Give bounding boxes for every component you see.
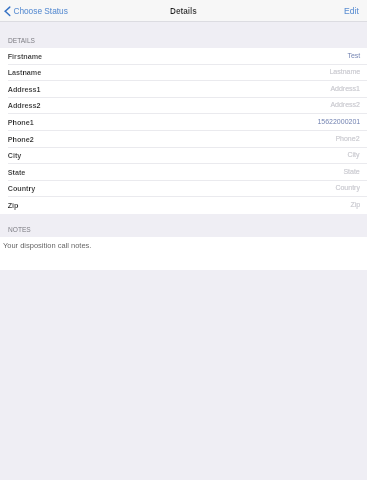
button[interactable]: Phone2 bbox=[0, 131, 367, 148]
button[interactable]: City bbox=[0, 148, 367, 164]
staticText: Phone2 bbox=[335, 135, 360, 143]
staticText: Lastname bbox=[329, 68, 360, 76]
staticText: Edit bbox=[344, 6, 359, 16]
button[interactable]: Zip bbox=[0, 197, 367, 214]
button[interactable]: Country bbox=[0, 181, 367, 197]
button[interactable]: Address1 bbox=[0, 81, 367, 98]
button[interactable]: State bbox=[0, 164, 367, 181]
other: Back bbox=[4, 6, 10, 16]
staticText: Country bbox=[335, 184, 360, 192]
button[interactable]: Phone1 bbox=[0, 114, 367, 131]
staticText: State bbox=[343, 168, 360, 176]
staticText: Address2 bbox=[8, 101, 41, 109]
staticText: Zip bbox=[8, 201, 19, 209]
staticText: State bbox=[8, 168, 26, 176]
staticText: Address2 bbox=[330, 101, 360, 109]
staticText: Address1 bbox=[330, 85, 360, 93]
staticText: City bbox=[8, 151, 22, 159]
staticText: Country bbox=[8, 184, 36, 192]
staticText: Lastname bbox=[8, 68, 42, 76]
button[interactable]: Firstname bbox=[0, 48, 367, 65]
staticText: NOTES bbox=[8, 226, 31, 233]
staticText: Phone1 bbox=[8, 118, 34, 126]
staticText: Choose Status bbox=[13, 6, 68, 15]
staticText: Zip bbox=[350, 201, 360, 209]
staticText: City bbox=[347, 151, 360, 159]
staticText: 15622000201 bbox=[317, 118, 360, 126]
staticText: Phone2 bbox=[8, 135, 34, 143]
button[interactable]: Back bbox=[0, 0, 72, 21]
staticText: Address1 bbox=[8, 85, 41, 93]
staticText: Your disposition call notes. bbox=[3, 241, 92, 249]
staticText: Firstname bbox=[8, 52, 43, 60]
staticText: Details bbox=[170, 7, 197, 16]
button[interactable]: Lastname bbox=[0, 65, 367, 81]
button[interactable]: Edit bbox=[344, 0, 367, 21]
staticText: DETAILS bbox=[8, 37, 35, 44]
staticText: Test bbox=[347, 52, 360, 60]
button[interactable]: Address2 bbox=[0, 98, 367, 114]
